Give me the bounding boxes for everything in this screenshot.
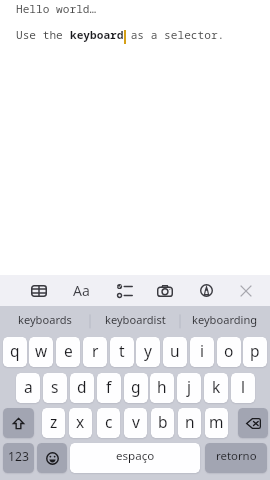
button[interactable]: d — [70, 373, 94, 403]
staticText: s — [51, 376, 59, 397]
button[interactable]: o — [217, 337, 241, 367]
button[interactable]: r — [83, 337, 107, 367]
staticText: n — [185, 411, 195, 432]
button[interactable]: f — [97, 373, 121, 403]
staticText: u — [170, 340, 180, 361]
button[interactable]: b — [151, 408, 174, 438]
button[interactable]: keyboardist — [90, 306, 180, 337]
staticText: retorno — [216, 448, 257, 464]
button[interactable]: e — [56, 337, 80, 367]
button[interactable]: retorno — [205, 443, 267, 473]
staticText: z — [50, 411, 58, 432]
staticText: g — [131, 376, 141, 397]
staticText: d — [77, 376, 87, 397]
staticText: q — [10, 340, 20, 361]
button[interactable]: c — [97, 408, 120, 438]
staticText: f — [106, 376, 112, 397]
staticText: v — [132, 411, 140, 432]
button[interactable]: l — [231, 373, 255, 403]
button[interactable]: z — [42, 408, 65, 438]
staticText: keyboarding — [192, 312, 258, 327]
button[interactable]: q — [3, 337, 27, 367]
button[interactable]: i — [190, 337, 214, 367]
button[interactable]: 123 — [3, 443, 34, 473]
staticText: espaço — [116, 448, 155, 464]
button[interactable]: k — [204, 373, 228, 403]
staticText: m — [209, 411, 224, 432]
button[interactable]: Text format — [66, 275, 96, 306]
staticText: 123 — [8, 448, 29, 465]
button[interactable]: v — [124, 408, 147, 438]
staticText: j — [187, 376, 191, 397]
button[interactable]: keyboarding — [180, 306, 270, 337]
staticText: h — [157, 376, 167, 397]
staticText: keyboardist — [105, 312, 166, 327]
button[interactable]: j — [177, 373, 201, 403]
button[interactable]: m — [205, 408, 228, 438]
button[interactable]: w — [29, 337, 53, 367]
staticText: l — [241, 376, 245, 397]
button[interactable]: y — [136, 337, 160, 367]
button[interactable]: Insert table — [23, 275, 55, 306]
button[interactable]: p — [243, 337, 267, 367]
button[interactable]: espaço — [70, 443, 200, 473]
button[interactable]: Emoji — [37, 443, 67, 473]
button[interactable]: x — [69, 408, 92, 438]
staticText: r — [92, 340, 99, 361]
staticText: o — [224, 340, 234, 361]
button[interactable]: n — [178, 408, 201, 438]
button[interactable]: a — [16, 373, 40, 403]
button[interactable]: Close keyboard — [230, 275, 262, 306]
button[interactable]: Camera — [149, 275, 181, 306]
staticText: Hello world… — [16, 1, 97, 16]
staticText: c — [105, 411, 113, 432]
staticText: p — [250, 340, 260, 361]
staticText: keyboards — [18, 312, 72, 327]
button[interactable]: Markup — [190, 275, 222, 306]
staticText: k — [212, 376, 221, 397]
button[interactable]: Checklist — [109, 275, 141, 306]
staticText: w — [35, 340, 48, 361]
button[interactable]: Delete — [238, 408, 268, 438]
button[interactable]: g — [124, 373, 148, 403]
button[interactable]: t — [110, 337, 134, 367]
staticText: keyboard — [70, 27, 124, 42]
button[interactable]: s — [43, 373, 67, 403]
button[interactable]: h — [150, 373, 174, 403]
button[interactable]: Shift — [3, 408, 34, 438]
staticText: x — [76, 411, 85, 432]
staticText: a — [24, 376, 33, 397]
staticText: b — [158, 411, 168, 432]
staticText: i — [200, 340, 204, 361]
staticText: e — [64, 340, 73, 361]
staticText: as a selector. — [124, 27, 225, 42]
staticText: Aa — [73, 281, 90, 300]
staticText: t — [119, 340, 125, 361]
staticText: y — [144, 340, 152, 361]
button[interactable]: u — [163, 337, 187, 367]
staticText: Use the — [16, 27, 70, 42]
button[interactable]: keyboards — [0, 306, 90, 337]
